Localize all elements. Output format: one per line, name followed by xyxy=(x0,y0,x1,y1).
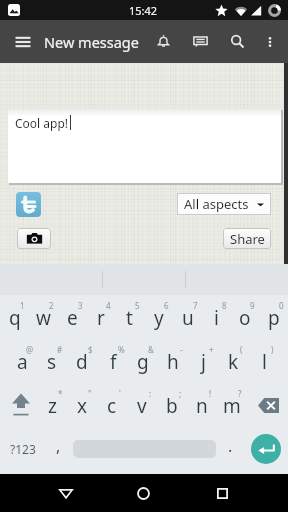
staticText: : xyxy=(149,388,152,399)
staticText: * xyxy=(58,388,63,399)
button[interactable]: 9 xyxy=(230,295,259,339)
button[interactable]: ! xyxy=(187,383,217,427)
staticText: o xyxy=(239,305,251,331)
button[interactable]: * xyxy=(37,383,67,427)
button[interactable]: Backspace xyxy=(248,383,288,427)
staticText: ? xyxy=(238,388,242,399)
button[interactable]: Share xyxy=(223,228,271,249)
button[interactable]: Back xyxy=(42,474,90,512)
button[interactable]: Home xyxy=(119,474,167,512)
staticText: # xyxy=(57,344,63,355)
staticText: ) xyxy=(271,344,274,355)
staticText: 5 xyxy=(135,300,140,311)
button[interactable]: 6 xyxy=(144,295,173,339)
button[interactable]: Period xyxy=(218,427,243,471)
staticText: Share xyxy=(230,230,265,248)
staticText: t xyxy=(126,305,133,331)
button[interactable]: - xyxy=(158,339,188,383)
button[interactable]: More options xyxy=(256,20,283,63)
button[interactable]: Space xyxy=(71,427,218,471)
staticText: All aspects xyxy=(184,195,249,213)
button[interactable]: 4 xyxy=(86,295,115,339)
button[interactable]: Recent apps xyxy=(198,474,246,512)
staticText: d xyxy=(76,349,88,375)
button[interactable]: : xyxy=(127,383,157,427)
staticText: 3 xyxy=(78,300,83,311)
staticText: , xyxy=(56,435,61,457)
staticText: l xyxy=(262,349,267,375)
staticText: h xyxy=(167,349,179,375)
staticText: g xyxy=(137,349,149,375)
staticText: x xyxy=(77,393,88,419)
button[interactable]: ? xyxy=(217,383,247,427)
button[interactable]: @ xyxy=(7,339,37,383)
button[interactable]: 5 xyxy=(115,295,144,339)
staticText: ?123 xyxy=(10,441,36,457)
staticText: & xyxy=(148,344,154,355)
staticText: r xyxy=(97,305,105,331)
button[interactable]: " xyxy=(67,383,97,427)
staticText: + xyxy=(209,344,214,355)
button[interactable]: 7 xyxy=(173,295,202,339)
staticText: m xyxy=(223,393,241,419)
staticText: f xyxy=(110,349,117,375)
button[interactable]: Symbols xyxy=(0,427,46,471)
staticText: 6 xyxy=(164,300,169,311)
button[interactable]: Search xyxy=(219,20,256,63)
button[interactable]: 0 xyxy=(259,295,288,339)
button[interactable]: All aspects xyxy=(177,193,271,215)
staticText: ; xyxy=(179,388,182,399)
button[interactable]: 2 xyxy=(29,295,58,339)
button[interactable]: Conversations xyxy=(182,20,219,63)
button[interactable]: $ xyxy=(67,339,97,383)
staticText: i xyxy=(214,305,219,331)
staticText: $ xyxy=(88,344,93,355)
button[interactable]: Notifications xyxy=(145,20,182,63)
staticText: a xyxy=(17,349,28,375)
staticText: q xyxy=(9,305,21,331)
button[interactable]: & xyxy=(128,339,158,383)
staticText: ' xyxy=(119,388,121,399)
button[interactable]: Navigation menu xyxy=(8,20,38,63)
staticText: u xyxy=(182,305,194,331)
button[interactable]: Twitter xyxy=(16,192,41,217)
button[interactable]: ( xyxy=(218,339,248,383)
staticText: y xyxy=(154,305,164,331)
button[interactable]: ; xyxy=(157,383,187,427)
staticText: v xyxy=(137,393,147,419)
staticText: 1 xyxy=(20,300,25,311)
staticText: % xyxy=(118,344,125,355)
staticText: 15:42 xyxy=(129,3,158,18)
staticText: j xyxy=(201,349,206,375)
button[interactable]: Attach photo xyxy=(17,228,51,249)
button[interactable]: 1 xyxy=(0,295,29,339)
button[interactable]: ) xyxy=(249,339,279,383)
button[interactable]: Shift xyxy=(4,383,37,427)
button[interactable]: Enter xyxy=(243,427,288,471)
staticText: 7 xyxy=(193,300,198,311)
button[interactable]: ' xyxy=(97,383,127,427)
staticText: " xyxy=(88,388,92,399)
button[interactable]: 8 xyxy=(202,295,231,339)
staticText: - xyxy=(180,344,183,355)
button[interactable]: + xyxy=(188,339,218,383)
staticText: c xyxy=(107,393,117,419)
staticText: k xyxy=(228,349,239,375)
staticText: 2 xyxy=(49,300,54,311)
staticText: z xyxy=(48,393,57,419)
staticText: New message xyxy=(44,32,139,52)
button[interactable]: # xyxy=(37,339,67,383)
staticText: s xyxy=(47,349,57,375)
staticText: p xyxy=(268,305,280,331)
staticText: @ xyxy=(26,344,34,355)
staticText: 4 xyxy=(106,300,111,311)
staticText: ( xyxy=(240,344,243,355)
staticText: ! xyxy=(209,388,212,399)
staticText: . xyxy=(228,435,233,457)
button[interactable]: % xyxy=(98,339,128,383)
button[interactable]: Comma xyxy=(46,427,71,471)
staticText: 9 xyxy=(250,300,255,311)
staticText: b xyxy=(166,393,178,419)
staticText: 0 xyxy=(279,300,284,311)
button[interactable]: 3 xyxy=(58,295,87,339)
